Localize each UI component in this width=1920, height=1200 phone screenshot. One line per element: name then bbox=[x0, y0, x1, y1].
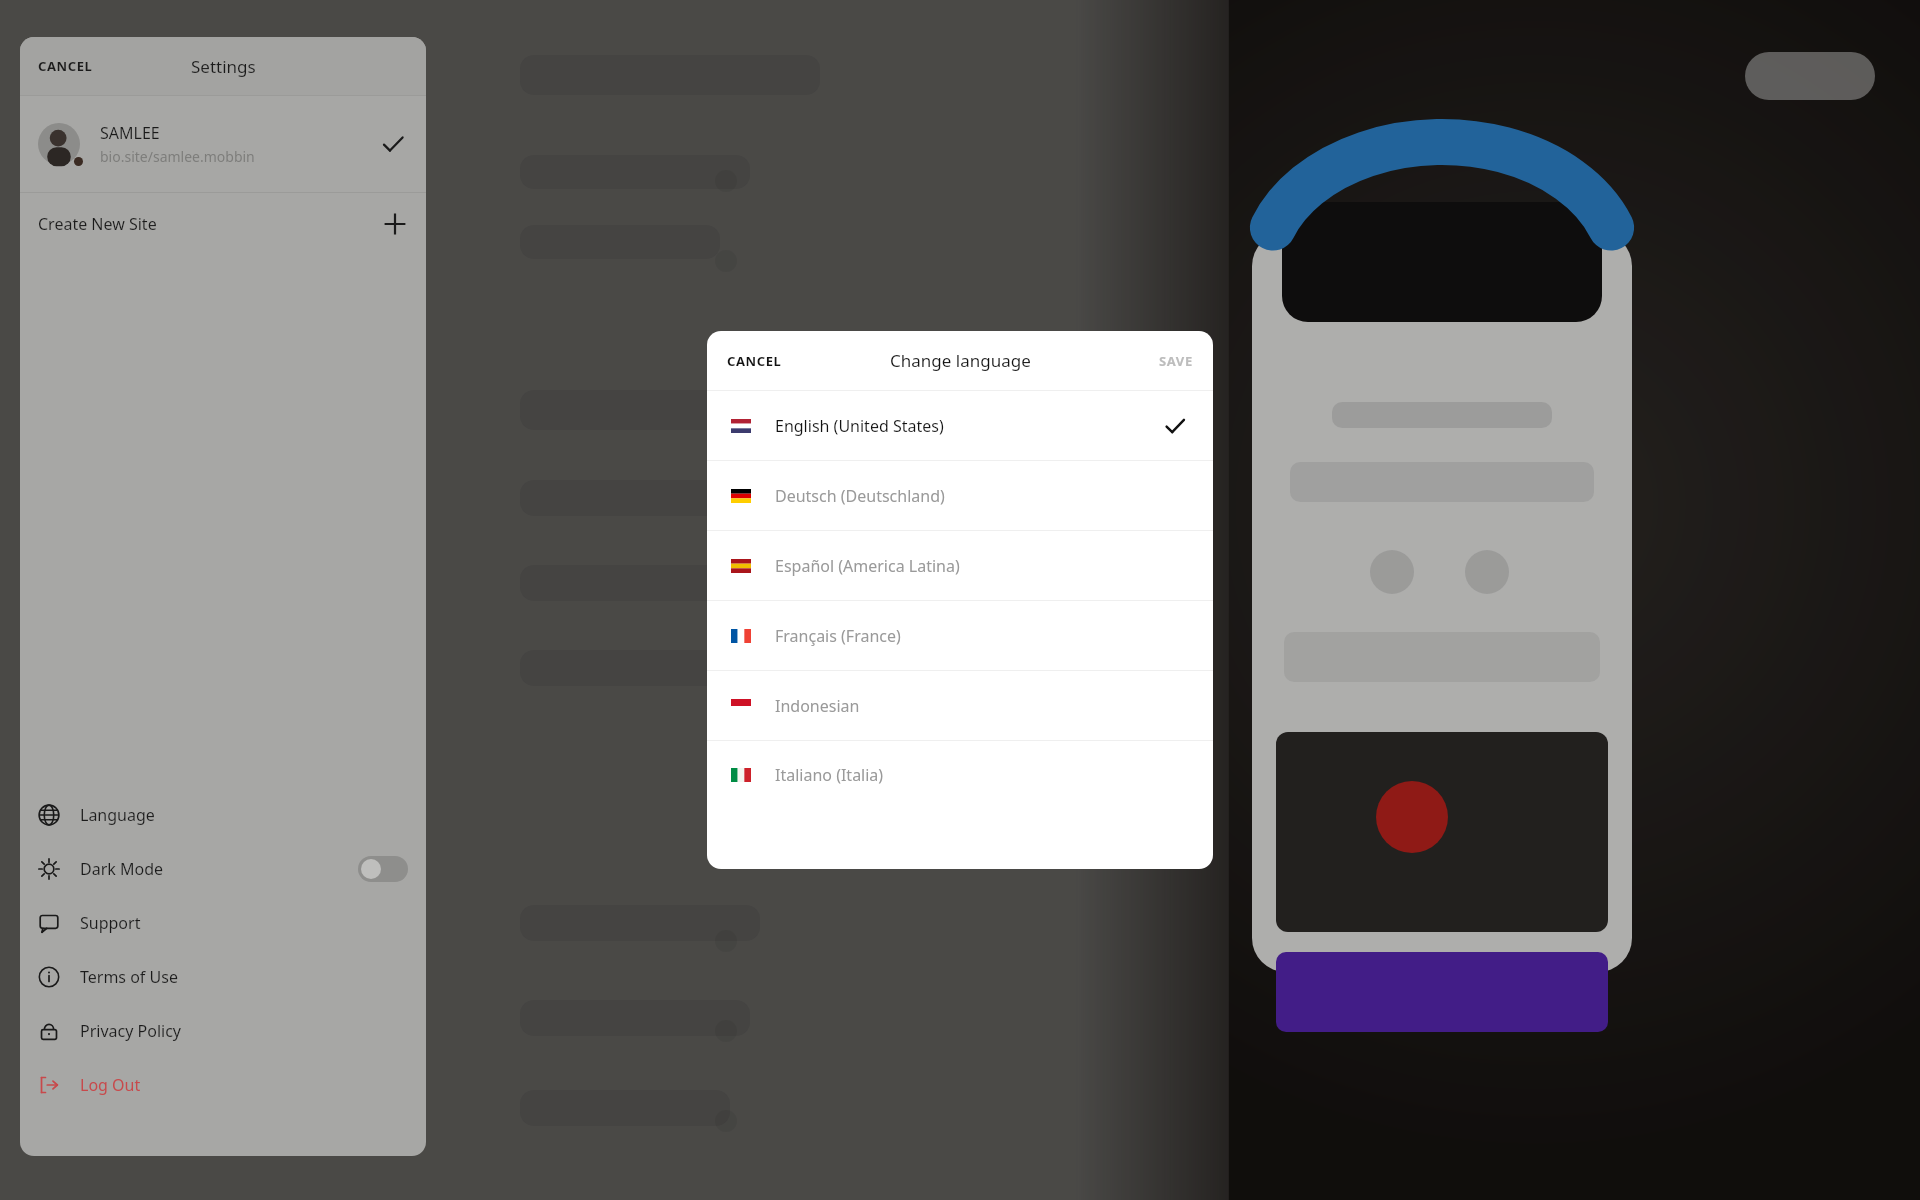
staticText: SAMLEE bbox=[100, 122, 160, 144]
button[interactable]: Support bbox=[20, 896, 426, 950]
staticText: SAVE bbox=[1159, 352, 1193, 370]
button[interactable]: Dark Mode toggle bbox=[358, 856, 408, 882]
button[interactable]: Privacy Policy bbox=[20, 1004, 426, 1058]
staticText: Settings bbox=[191, 55, 256, 78]
staticText: Log Out bbox=[80, 1074, 408, 1096]
staticText: Terms of Use bbox=[80, 966, 408, 988]
staticText: Dark Mode bbox=[80, 858, 358, 880]
staticText: Español (America Latina) bbox=[775, 555, 1189, 577]
staticText: CANCEL bbox=[38, 57, 93, 75]
staticText: CANCEL bbox=[727, 352, 782, 370]
staticText: English (United States) bbox=[775, 415, 1161, 437]
button[interactable]: Français (France) bbox=[707, 601, 1213, 670]
button[interactable]: CANCEL bbox=[715, 344, 794, 378]
staticText: Privacy Policy bbox=[80, 1020, 408, 1042]
button[interactable]: Create New Site bbox=[20, 193, 426, 255]
button[interactable]: Language bbox=[20, 788, 426, 842]
button[interactable]: Italiano (Italia) bbox=[707, 741, 1213, 809]
button[interactable]: Log Out bbox=[20, 1058, 426, 1112]
staticText: Français (France) bbox=[775, 625, 1189, 647]
button[interactable]: Dark Mode bbox=[20, 842, 426, 896]
button[interactable]: Español (America Latina) bbox=[707, 531, 1213, 600]
button[interactable]: CANCEL bbox=[26, 49, 105, 83]
button[interactable]: English (United States) bbox=[707, 391, 1213, 460]
staticText: Indonesian bbox=[775, 695, 1189, 717]
other: Selected bbox=[378, 129, 408, 159]
button[interactable]: Indonesian bbox=[707, 671, 1213, 740]
staticText: Change language bbox=[890, 349, 1031, 372]
button[interactable]: SAMLEE bbox=[20, 96, 426, 192]
staticText: Create New Site bbox=[38, 213, 382, 235]
staticText: Support bbox=[80, 912, 408, 934]
button[interactable]: Terms of Use bbox=[20, 950, 426, 1004]
other: Add site bbox=[382, 211, 408, 237]
staticText: bio.site/samlee.mobbin bbox=[100, 147, 255, 166]
staticText: Deutsch (Deutschland) bbox=[775, 485, 1189, 507]
staticText: Language bbox=[80, 804, 408, 826]
button[interactable]: Deutsch (Deutschland) bbox=[707, 461, 1213, 530]
staticText: Italiano (Italia) bbox=[775, 764, 1189, 786]
button[interactable]: SAVE bbox=[1147, 344, 1205, 378]
